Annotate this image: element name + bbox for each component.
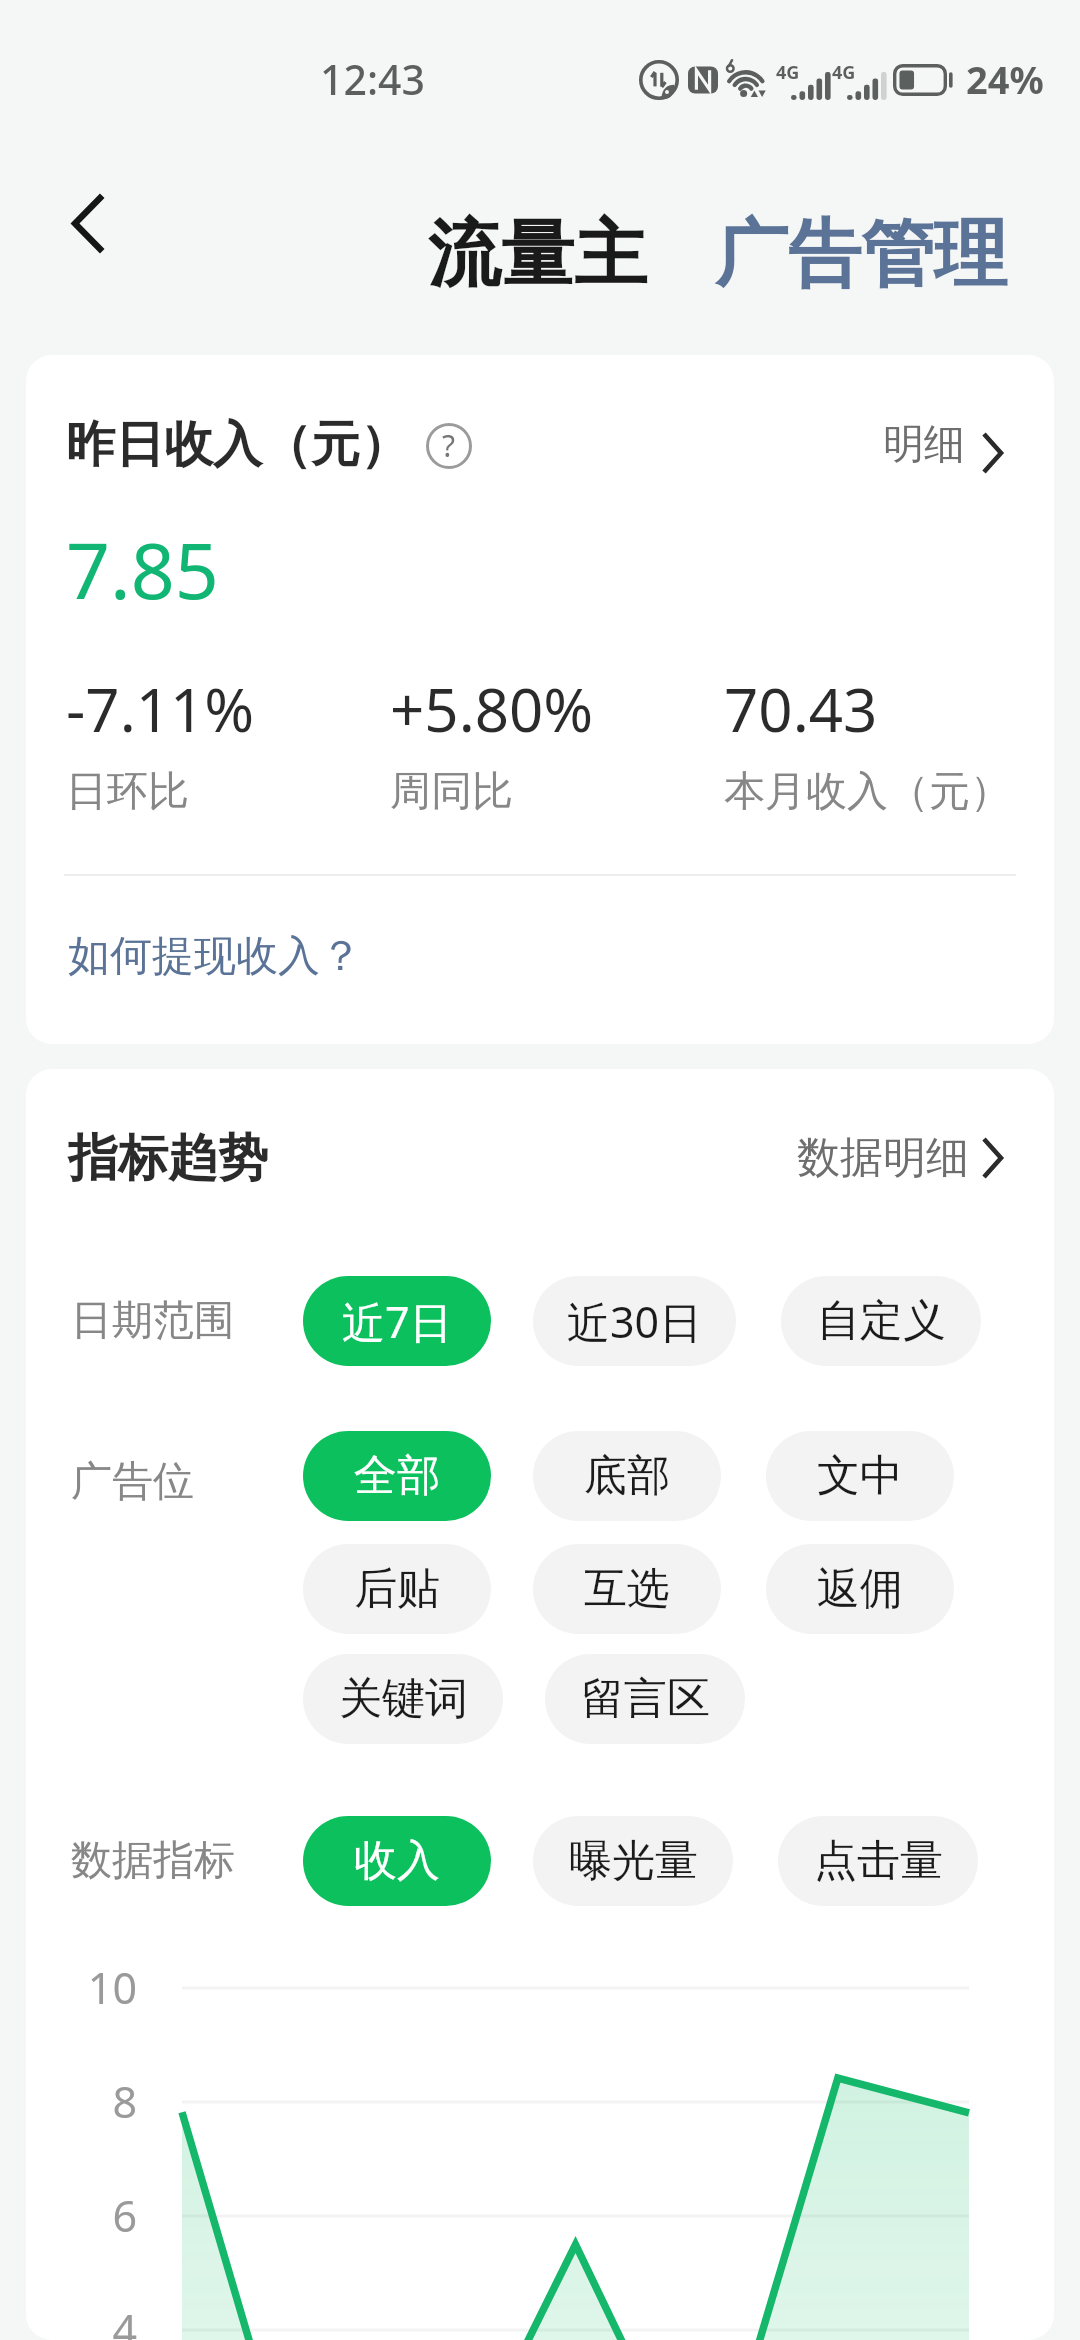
- staticText: -7.11%: [66, 668, 255, 750]
- staticText: 后贴: [354, 1562, 440, 1616]
- staticText: 4G: [832, 60, 856, 85]
- button[interactable]: 点击量: [778, 1816, 978, 1906]
- button[interactable]: 自定义: [781, 1276, 981, 1366]
- staticText: 返佣: [817, 1562, 903, 1616]
- staticText: ?: [442, 425, 456, 466]
- button[interactable]: 后贴: [303, 1544, 491, 1634]
- staticText: 广告位: [71, 1456, 303, 1508]
- button[interactable]: 互选: [533, 1544, 721, 1634]
- button[interactable]: 底部: [533, 1431, 721, 1521]
- staticText: 4G: [776, 60, 800, 85]
- staticText: 本月收入（元）: [724, 766, 1011, 818]
- button[interactable]: Help: [426, 423, 472, 469]
- button[interactable]: 明细: [855, 411, 1001, 479]
- staticText: 近30日: [567, 1292, 703, 1351]
- staticText: 日环比: [66, 766, 189, 818]
- button[interactable]: 近30日: [533, 1276, 736, 1366]
- staticText: 曝光量: [569, 1834, 698, 1888]
- staticText: 广告管理: [715, 209, 1007, 301]
- staticText: 收入: [354, 1834, 440, 1888]
- staticText: 如何提现收入？: [68, 930, 362, 983]
- button[interactable]: 如何提现收入？: [26, 927, 486, 985]
- staticText: 日期范围: [71, 1295, 303, 1347]
- staticText: 70.43: [724, 668, 878, 750]
- button[interactable]: 收入: [303, 1816, 491, 1906]
- staticText: 留言区: [581, 1672, 710, 1726]
- staticText: 昨日收入（元）: [66, 414, 409, 476]
- button[interactable]: 全部: [303, 1431, 491, 1521]
- button[interactable]: 留言区: [545, 1654, 745, 1744]
- staticText: 近7日: [342, 1292, 453, 1351]
- staticText: 互选: [584, 1562, 670, 1616]
- staticText: 24%: [966, 53, 1044, 105]
- staticText: 数据明细: [797, 1131, 969, 1185]
- staticText: 指标趋势: [68, 1127, 268, 1190]
- button[interactable]: 返佣: [766, 1544, 954, 1634]
- staticText: 10: [26, 1958, 137, 2017]
- staticText: 关键词: [339, 1672, 468, 1726]
- button[interactable]: 数据明细: [769, 1124, 1001, 1192]
- button[interactable]: 近7日: [303, 1276, 491, 1366]
- button[interactable]: Back: [35, 171, 139, 275]
- staticText: 8: [26, 2072, 137, 2131]
- staticText: 文中: [817, 1449, 903, 1503]
- staticText: 7.85: [66, 517, 219, 622]
- staticText: 周同比: [390, 766, 513, 818]
- button[interactable]: 文中: [766, 1431, 954, 1521]
- staticText: 数据指标: [71, 1835, 303, 1887]
- staticText: 自定义: [817, 1294, 946, 1348]
- staticText: 4: [26, 2300, 137, 2340]
- staticText: 点击量: [814, 1834, 943, 1888]
- staticText: +5.80%: [390, 668, 594, 750]
- staticText: 流量主: [428, 209, 647, 301]
- button[interactable]: 关键词: [303, 1654, 503, 1744]
- staticText: 明细: [883, 419, 965, 471]
- staticText: 底部: [584, 1449, 670, 1503]
- staticText: 6: [26, 2186, 137, 2245]
- staticText: 12:43: [320, 51, 425, 107]
- staticText: 全部: [354, 1449, 440, 1503]
- button[interactable]: 曝光量: [533, 1816, 733, 1906]
